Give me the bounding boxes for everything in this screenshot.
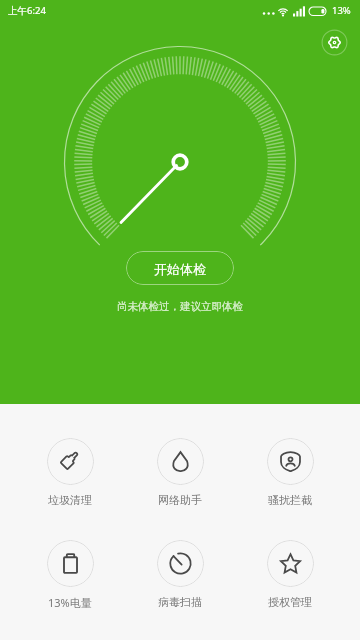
staticText: 13% xyxy=(332,4,351,17)
staticText: 13%电量 xyxy=(48,595,92,610)
button[interactable]: 垃圾清理 xyxy=(15,438,125,507)
button[interactable]: 病毒扫描 xyxy=(125,540,235,609)
button[interactable]: 13%电量 xyxy=(15,540,125,610)
button[interactable]: 网络助手 xyxy=(125,438,235,507)
button[interactable]: 骚扰拦截 xyxy=(235,438,345,507)
button[interactable]: 授权管理 xyxy=(235,540,345,609)
staticText: 尚未体检过，建议立即体检 xyxy=(117,300,243,313)
staticText: 骚扰拦截 xyxy=(268,493,312,507)
staticText: 病毒扫描 xyxy=(158,595,202,609)
staticText: 垃圾清理 xyxy=(48,493,92,507)
staticText: 上午6:24 xyxy=(8,4,46,17)
button[interactable]: 开始体检 xyxy=(126,251,234,285)
staticText: 网络助手 xyxy=(158,493,202,507)
staticText: 开始体检 xyxy=(154,261,206,277)
staticText: 授权管理 xyxy=(268,595,312,609)
button[interactable]: Settings xyxy=(319,27,350,58)
